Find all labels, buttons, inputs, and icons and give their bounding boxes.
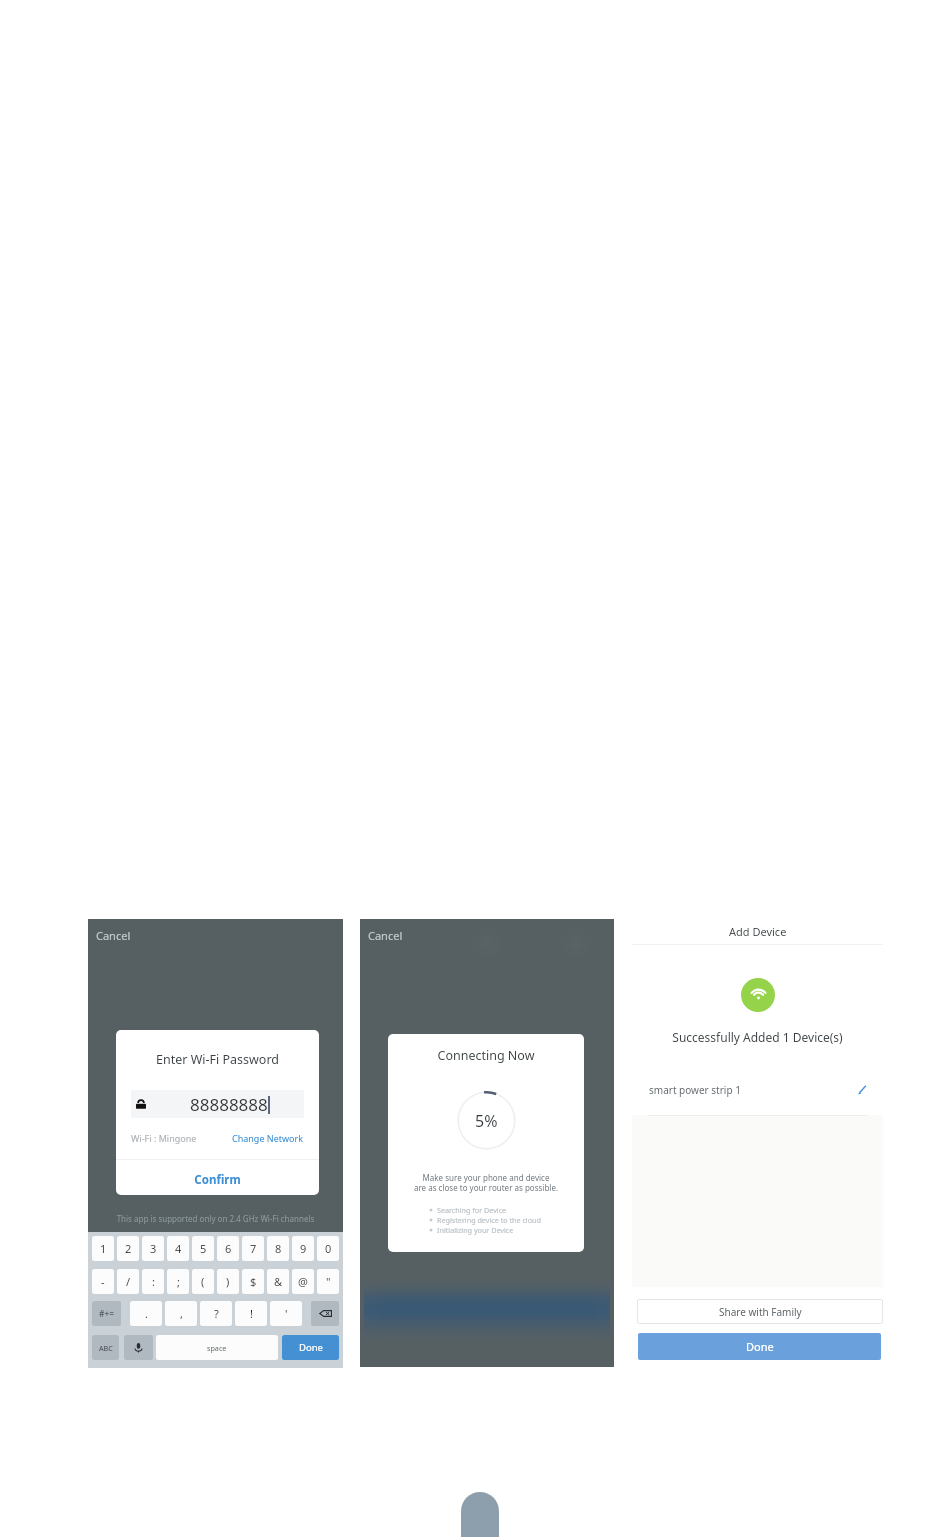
- button[interactable]: #+=: [92, 1301, 121, 1326]
- staticText: 8: [275, 1241, 282, 1256]
- button[interactable]: $: [242, 1269, 264, 1294]
- staticText: 5: [200, 1241, 207, 1256]
- button[interactable]: Cancel: [88, 919, 343, 947]
- button[interactable]: Rename device: [855, 1083, 869, 1097]
- button[interactable]: ': [270, 1301, 302, 1326]
- button[interactable]: :: [142, 1269, 164, 1294]
- button[interactable]: (: [192, 1269, 214, 1294]
- staticText: ": [326, 1274, 331, 1289]
- staticText: ': [285, 1306, 288, 1321]
- button[interactable]: 5: [192, 1236, 214, 1261]
- staticText: Enter Wi-Fi Password: [116, 1051, 319, 1068]
- staticText: /: [126, 1274, 131, 1289]
- staticText: Change Network: [232, 1132, 304, 1144]
- staticText: 7: [250, 1241, 257, 1256]
- button[interactable]: ;: [167, 1269, 189, 1294]
- button[interactable]: Cancel: [360, 919, 614, 947]
- button[interactable]: Confirm: [116, 1172, 319, 1190]
- button[interactable]: ?: [200, 1301, 232, 1326]
- staticText: ;: [177, 1274, 180, 1289]
- staticText: smart power strip 1: [649, 1083, 855, 1097]
- button[interactable]: 3: [142, 1236, 164, 1261]
- staticText: 1: [100, 1241, 107, 1256]
- button[interactable]: 4: [167, 1236, 189, 1261]
- staticText: 4: [175, 1241, 182, 1256]
- staticText: This app is supported only on 2.4 GHz Wi…: [88, 1213, 343, 1224]
- staticText: 5%: [475, 1110, 498, 1132]
- button[interactable]: 1: [92, 1236, 114, 1261]
- staticText: ?: [214, 1306, 219, 1321]
- staticText: Registering device to the cloud: [437, 1215, 541, 1225]
- staticText: Wi-Fi : Mingone: [131, 1132, 197, 1144]
- staticText: .: [145, 1306, 148, 1321]
- staticText: #+=: [99, 1308, 115, 1320]
- staticText: 88888888: [190, 1093, 268, 1116]
- button[interactable]: 6: [217, 1236, 239, 1261]
- staticText: ABC: [99, 1343, 113, 1353]
- staticText: 9: [300, 1241, 307, 1256]
- button[interactable]: smart power strip 1: [632, 1064, 883, 1115]
- staticText: Add Device: [729, 924, 787, 939]
- button[interactable]: !: [235, 1301, 267, 1326]
- staticText: @: [298, 1274, 308, 1289]
- staticText: Share with Family: [719, 1305, 802, 1319]
- staticText: Initializing your Device: [437, 1225, 514, 1235]
- staticText: 3: [150, 1241, 157, 1256]
- button[interactable]: Done: [282, 1335, 339, 1360]
- button[interactable]: ABC: [92, 1335, 119, 1360]
- staticText: -: [101, 1274, 105, 1289]
- button[interactable]: @: [292, 1269, 314, 1294]
- button[interactable]: 9: [292, 1236, 314, 1261]
- staticText: Connecting Now: [388, 1047, 584, 1064]
- button[interactable]: -: [92, 1269, 114, 1294]
- button[interactable]: Add Device: [632, 919, 883, 944]
- staticText: :: [152, 1274, 155, 1289]
- button[interactable]: Share with Family: [637, 1299, 883, 1324]
- staticText: Cancel: [368, 928, 403, 943]
- staticText: !: [250, 1306, 253, 1321]
- staticText: Confirm: [116, 1172, 319, 1188]
- button[interactable]: 2: [117, 1236, 139, 1261]
- staticText: &: [274, 1274, 283, 1289]
- button[interactable]: ,: [165, 1301, 197, 1326]
- button[interactable]: 8: [267, 1236, 289, 1261]
- button[interactable]: 7: [242, 1236, 264, 1261]
- button[interactable]: 0: [317, 1236, 339, 1261]
- button[interactable]: &: [267, 1269, 289, 1294]
- staticText: space: [207, 1343, 227, 1353]
- button[interactable]: ): [217, 1269, 239, 1294]
- staticText: 0: [325, 1241, 332, 1256]
- staticText: 6: [225, 1241, 232, 1256]
- staticText: 2: [125, 1241, 132, 1256]
- staticText: ): [226, 1274, 230, 1289]
- button[interactable]: ": [317, 1269, 339, 1294]
- staticText: (: [201, 1274, 205, 1289]
- staticText: Make sure your phone and device are as c…: [388, 1172, 584, 1194]
- button[interactable]: Change Network: [232, 1132, 304, 1144]
- button[interactable]: Backspace: [311, 1301, 339, 1326]
- button[interactable]: Done: [638, 1333, 881, 1360]
- button[interactable]: Dictation: [124, 1335, 153, 1360]
- button[interactable]: .: [130, 1301, 162, 1326]
- staticText: Searching for Device: [437, 1205, 507, 1215]
- staticText: Done: [299, 1341, 323, 1354]
- staticText: ,: [180, 1306, 183, 1321]
- staticText: Cancel: [96, 928, 131, 943]
- staticText: Successfully Added 1 Device(s): [632, 1029, 883, 1045]
- staticText: $: [250, 1274, 257, 1289]
- staticText: Done: [746, 1339, 774, 1354]
- button[interactable]: space: [156, 1335, 278, 1360]
- button[interactable]: /: [117, 1269, 139, 1294]
